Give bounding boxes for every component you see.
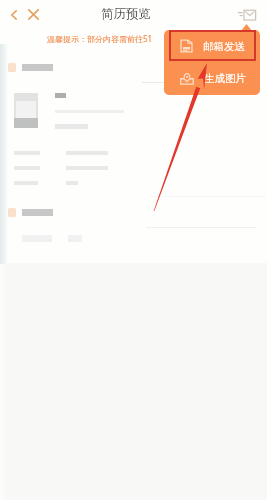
button[interactable]: 生成图片 (164, 62, 260, 95)
button[interactable]: Share (234, 2, 260, 28)
button[interactable]: Close (23, 4, 43, 24)
staticText: 邮箱发送 (203, 40, 245, 53)
staticText: 温馨提示：部分内容需前往51 (47, 33, 153, 44)
staticText: 生成图片 (204, 72, 246, 85)
button[interactable]: 邮箱发送 (164, 30, 260, 62)
staticText: 简历预览 (101, 6, 151, 22)
button[interactable]: Back (4, 5, 24, 25)
